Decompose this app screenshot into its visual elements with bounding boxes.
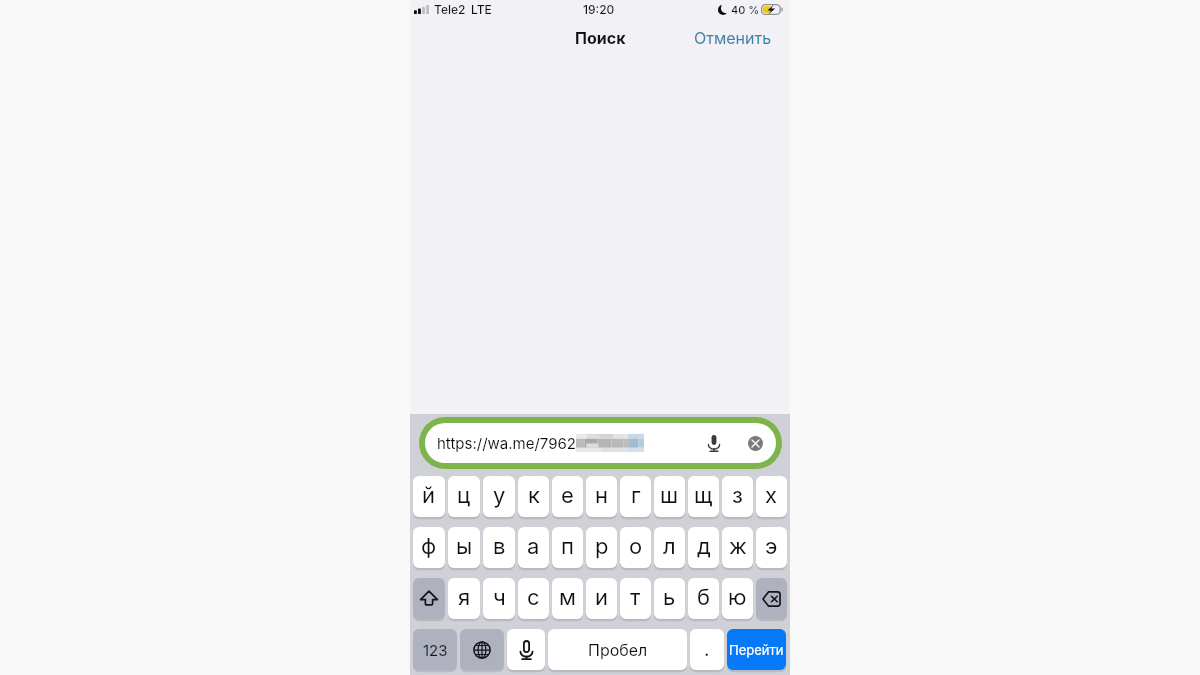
staticText: с xyxy=(527,584,540,611)
button[interactable]: ф xyxy=(413,527,445,568)
staticText: м xyxy=(559,584,576,611)
staticText: ь xyxy=(663,584,676,611)
staticText: э xyxy=(765,533,778,560)
button[interactable]: х xyxy=(756,476,787,517)
staticText: е xyxy=(561,482,574,509)
staticText: к xyxy=(528,482,540,509)
button[interactable]: Пробел xyxy=(548,629,687,670)
staticText: . xyxy=(704,638,710,661)
button[interactable]: ь xyxy=(654,578,685,619)
button[interactable]: ц xyxy=(448,476,480,517)
staticText: ч xyxy=(493,584,506,611)
button[interactable]: т xyxy=(620,578,651,619)
staticText: б xyxy=(697,584,711,611)
staticText: ж xyxy=(729,533,747,560)
staticText: д xyxy=(697,533,711,560)
button[interactable]: е xyxy=(552,476,583,517)
staticText: ц xyxy=(457,482,471,509)
button[interactable]: э xyxy=(756,527,787,568)
staticText: Поиск xyxy=(575,28,626,47)
button[interactable]: ю xyxy=(722,578,753,619)
button[interactable]: 123 xyxy=(413,629,457,670)
staticText: з xyxy=(732,482,743,509)
button[interactable]: я xyxy=(448,578,480,619)
button[interactable]: щ xyxy=(688,476,719,517)
staticText: х xyxy=(765,482,778,509)
staticText: ш xyxy=(660,482,679,509)
button[interactable]: Change keyboard xyxy=(460,629,504,670)
staticText: о xyxy=(629,533,643,560)
button[interactable]: д xyxy=(688,527,719,568)
staticText: ф xyxy=(421,533,437,560)
staticText: ю xyxy=(728,584,747,611)
button[interactable]: р xyxy=(586,527,617,568)
button[interactable]: Dictation xyxy=(507,629,545,670)
button[interactable]: з xyxy=(722,476,753,517)
button[interactable]: к xyxy=(518,476,549,517)
staticText: 19:20 xyxy=(583,2,615,17)
button[interactable]: м xyxy=(552,578,583,619)
button[interactable]: а xyxy=(518,527,549,568)
button[interactable]: и xyxy=(586,578,617,619)
staticText: Перейти xyxy=(729,642,784,658)
staticText: 123 xyxy=(423,641,448,659)
button[interactable]: г xyxy=(620,476,651,517)
button[interactable]: ш xyxy=(654,476,685,517)
staticText: й xyxy=(422,482,436,509)
staticText: л xyxy=(663,533,676,560)
staticText: щ xyxy=(694,482,713,509)
staticText: г xyxy=(631,482,641,509)
button[interactable]: в xyxy=(483,527,515,568)
button[interactable]: Backspace xyxy=(756,578,787,619)
button[interactable]: б xyxy=(688,578,719,619)
button[interactable]: Shift xyxy=(413,578,445,619)
staticText: https://wa.me/7962 xyxy=(437,434,576,452)
button[interactable]: у xyxy=(483,476,515,517)
button[interactable]: Отменить xyxy=(676,23,790,52)
button[interactable]: ы xyxy=(448,527,480,568)
button[interactable]: н xyxy=(586,476,617,517)
button[interactable]: ж xyxy=(722,527,753,568)
button[interactable]: л xyxy=(654,527,685,568)
staticText: н xyxy=(595,482,609,509)
staticText: п xyxy=(561,533,574,560)
staticText: LTE xyxy=(471,2,492,17)
staticText: р xyxy=(595,533,609,560)
button[interactable]: й xyxy=(413,476,445,517)
button[interactable]: п xyxy=(552,527,583,568)
button[interactable]: Dictate xyxy=(701,430,727,456)
button[interactable]: Clear text xyxy=(743,431,767,455)
staticText: Пробел xyxy=(588,640,648,659)
staticText: у xyxy=(493,482,506,509)
staticText: и xyxy=(595,584,609,611)
staticText: в xyxy=(493,533,506,560)
staticText: 40 % xyxy=(731,3,760,16)
staticText: Отменить xyxy=(694,28,772,47)
staticText: а xyxy=(527,533,540,560)
staticText: я xyxy=(458,584,471,611)
button[interactable]: ч xyxy=(483,578,515,619)
button[interactable]: о xyxy=(620,527,651,568)
staticText: Tele2 xyxy=(434,2,466,17)
button[interactable]: . xyxy=(690,629,724,670)
button[interactable]: с xyxy=(518,578,549,619)
button[interactable]: https://wa.me/7962 xyxy=(425,423,776,463)
button[interactable]: Перейти xyxy=(727,629,786,670)
staticText: ы xyxy=(456,533,473,560)
staticText: т xyxy=(630,584,641,611)
